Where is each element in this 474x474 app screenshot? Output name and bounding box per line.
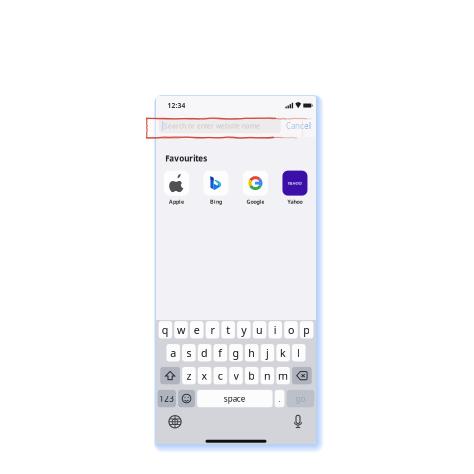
button[interactable]: b <box>245 367 258 384</box>
button[interactable]: p <box>300 321 313 338</box>
button[interactable]: q <box>159 321 172 338</box>
staticText: d <box>201 346 208 360</box>
button[interactable]: Delete <box>292 367 312 384</box>
button[interactable]: r <box>206 321 219 338</box>
button[interactable]: a <box>166 344 180 361</box>
staticText: o <box>288 323 294 337</box>
button[interactable]: Shift <box>160 367 180 384</box>
button[interactable]: y <box>237 321 251 338</box>
button[interactable]: u <box>253 321 266 338</box>
staticText: y <box>241 323 246 337</box>
staticText: g <box>232 346 239 360</box>
button[interactable]: c <box>214 367 227 384</box>
button[interactable]: Bing <box>199 171 233 205</box>
staticText: r <box>210 323 214 337</box>
button[interactable]: o <box>284 321 298 338</box>
button[interactable]: x <box>198 367 211 384</box>
button[interactable]: Cancel <box>286 121 311 131</box>
button[interactable]: v <box>229 367 243 384</box>
staticText: Apple <box>169 198 184 205</box>
button[interactable]: YAHOO! <box>278 171 312 205</box>
button[interactable]: z <box>182 367 196 384</box>
staticText: Search or enter website name <box>164 122 260 130</box>
staticText: l <box>297 346 300 360</box>
button[interactable]: e <box>190 321 203 338</box>
staticText: Yahoo <box>287 198 302 205</box>
staticText: 123 <box>159 393 174 404</box>
staticText: a <box>170 346 176 360</box>
staticText: u <box>256 323 263 337</box>
staticText: space <box>224 393 246 404</box>
button[interactable]: Switch keyboard <box>164 415 186 429</box>
staticText: k <box>280 346 286 360</box>
button[interactable]: Search or enter website name <box>159 119 281 133</box>
staticText: b <box>248 369 255 383</box>
button[interactable]: h <box>245 344 258 361</box>
button[interactable]: s <box>182 344 196 361</box>
button[interactable]: l <box>292 344 306 361</box>
button[interactable]: f <box>213 344 227 361</box>
button[interactable]: Emoji <box>178 390 195 407</box>
button[interactable]: d <box>198 344 211 361</box>
staticText: go <box>295 393 305 404</box>
button[interactable]: Apple <box>160 171 193 205</box>
staticText: v <box>233 369 238 383</box>
staticText: 12:34 <box>167 101 185 110</box>
button[interactable]: k <box>276 344 290 361</box>
button[interactable]: Dictation <box>287 415 309 429</box>
staticText: w <box>177 323 185 337</box>
button[interactable]: n <box>261 367 274 384</box>
staticText: j <box>266 346 269 360</box>
button[interactable]: m <box>276 367 290 384</box>
staticText: x <box>202 369 208 383</box>
staticText: t <box>226 323 230 337</box>
staticText: q <box>162 323 169 337</box>
staticText: p <box>303 323 310 337</box>
button[interactable]: . <box>275 390 284 407</box>
staticText: m <box>278 369 288 383</box>
button[interactable]: w <box>174 321 188 338</box>
staticText: Bing <box>210 198 222 205</box>
button[interactable]: g <box>229 344 243 361</box>
staticText: c <box>218 369 223 383</box>
button[interactable]: space <box>197 390 272 407</box>
staticText: . <box>279 393 281 404</box>
staticText: e <box>194 323 200 337</box>
staticText: Google <box>246 198 264 205</box>
staticText: i <box>274 323 277 337</box>
staticText: h <box>248 346 255 360</box>
staticText: s <box>186 346 191 360</box>
staticText: YAHOO! <box>287 180 302 186</box>
button[interactable]: 123 <box>158 390 176 407</box>
button[interactable]: go <box>287 390 314 407</box>
staticText: n <box>264 369 271 383</box>
staticText: Favourites <box>165 153 207 164</box>
staticText: z <box>186 369 191 383</box>
button[interactable]: j <box>261 344 274 361</box>
staticText: f <box>218 346 222 360</box>
button[interactable]: t <box>221 321 235 338</box>
button[interactable]: Google <box>239 171 272 205</box>
staticText: Cancel <box>286 121 311 131</box>
button[interactable]: i <box>268 321 282 338</box>
